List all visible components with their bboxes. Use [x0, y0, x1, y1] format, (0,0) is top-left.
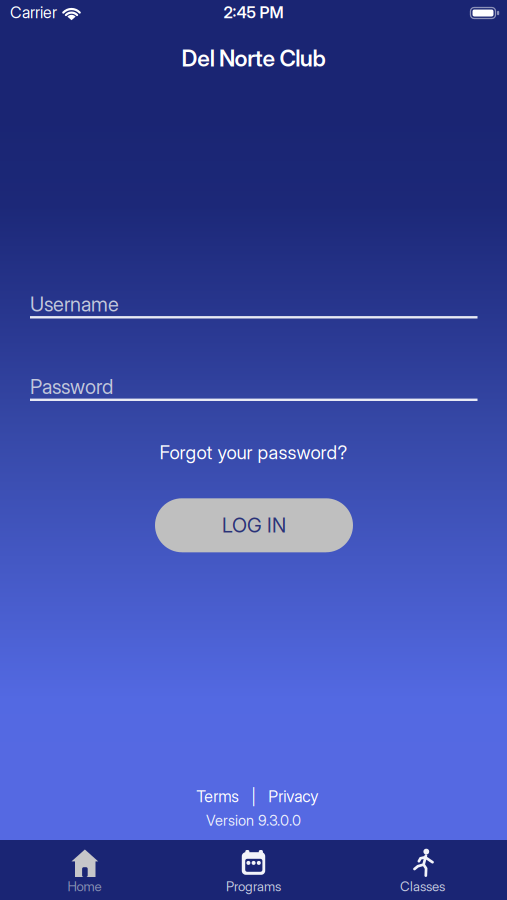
- staticText: Home: [67, 878, 101, 894]
- staticText: |: [251, 787, 256, 806]
- button[interactable]: Programs: [169, 840, 338, 900]
- button[interactable]: Forgot your password?: [159, 441, 347, 463]
- button[interactable]: LOG IN: [155, 498, 353, 552]
- button[interactable]: Privacy: [268, 787, 318, 806]
- button[interactable]: Home: [0, 840, 169, 900]
- staticText: Password: [30, 375, 113, 398]
- button[interactable]: Password: [30, 373, 477, 400]
- staticText: Username: [30, 292, 119, 316]
- staticText: Del Norte Club: [182, 45, 325, 72]
- staticText: Terms: [196, 787, 239, 806]
- staticText: Privacy: [268, 787, 318, 806]
- staticText: LOG IN: [222, 513, 286, 537]
- button[interactable]: Username: [30, 291, 477, 318]
- staticText: Carrier: [10, 3, 57, 22]
- staticText: Forgot your password?: [159, 441, 347, 463]
- button[interactable]: Terms: [196, 787, 239, 806]
- staticText: 2:45 PM: [223, 3, 283, 22]
- staticText: Classes: [400, 878, 445, 894]
- button[interactable]: Classes: [338, 840, 507, 900]
- staticText: Version 9.3.0.0: [206, 812, 301, 829]
- staticText: Programs: [226, 878, 281, 894]
